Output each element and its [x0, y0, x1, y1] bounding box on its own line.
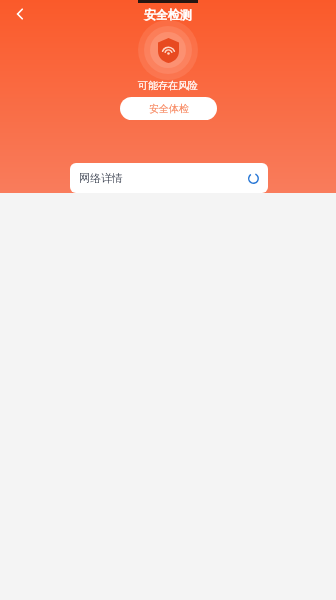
- button[interactable]: 安全体检: [120, 97, 217, 120]
- staticText: 安全检测: [144, 7, 192, 22]
- staticText: 可能存在风险: [138, 79, 198, 92]
- button[interactable]: Back: [6, 0, 34, 28]
- staticText: 网络详情: [79, 171, 123, 185]
- button[interactable]: 网络详情: [70, 163, 268, 193]
- staticText: 安全体检: [149, 102, 189, 115]
